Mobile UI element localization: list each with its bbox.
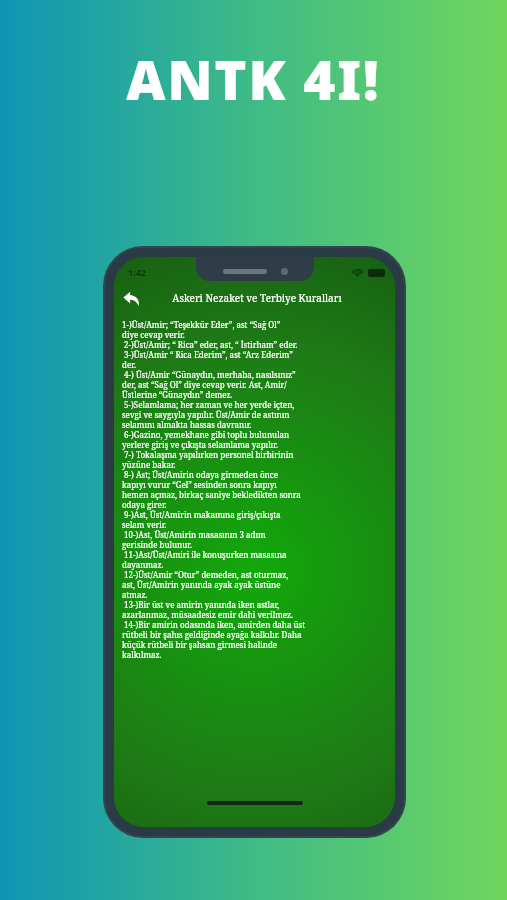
staticText: ANTK 4I! [126, 42, 381, 116]
staticText: Askeri Nezaket ve Terbiye Kuralları [172, 291, 342, 305]
staticText: 1:42 [128, 266, 146, 278]
staticText: 1-)Üst/Amir; “Teşekkür Eder”, ast “Sağ O… [122, 319, 389, 660]
button[interactable]: Back [114, 283, 148, 313]
